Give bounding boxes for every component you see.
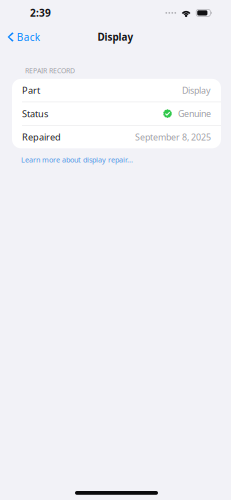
staticText: Display bbox=[182, 84, 211, 96]
button[interactable]: Back bbox=[0, 24, 47, 50]
staticText: Part bbox=[22, 84, 40, 96]
staticText: Repaired bbox=[22, 131, 61, 143]
staticText: Learn more about display repair... bbox=[21, 155, 133, 165]
staticText: September 8, 2025 bbox=[135, 131, 211, 143]
staticText: Genuine bbox=[178, 108, 211, 120]
staticText: Status bbox=[22, 107, 48, 120]
button[interactable]: Learn more about display repair... bbox=[12, 148, 221, 168]
staticText: Display bbox=[97, 30, 133, 44]
staticText: 2:39 bbox=[30, 6, 51, 20]
staticText: REPAIR RECORD bbox=[25, 66, 75, 75]
staticText: Back bbox=[17, 30, 40, 44]
